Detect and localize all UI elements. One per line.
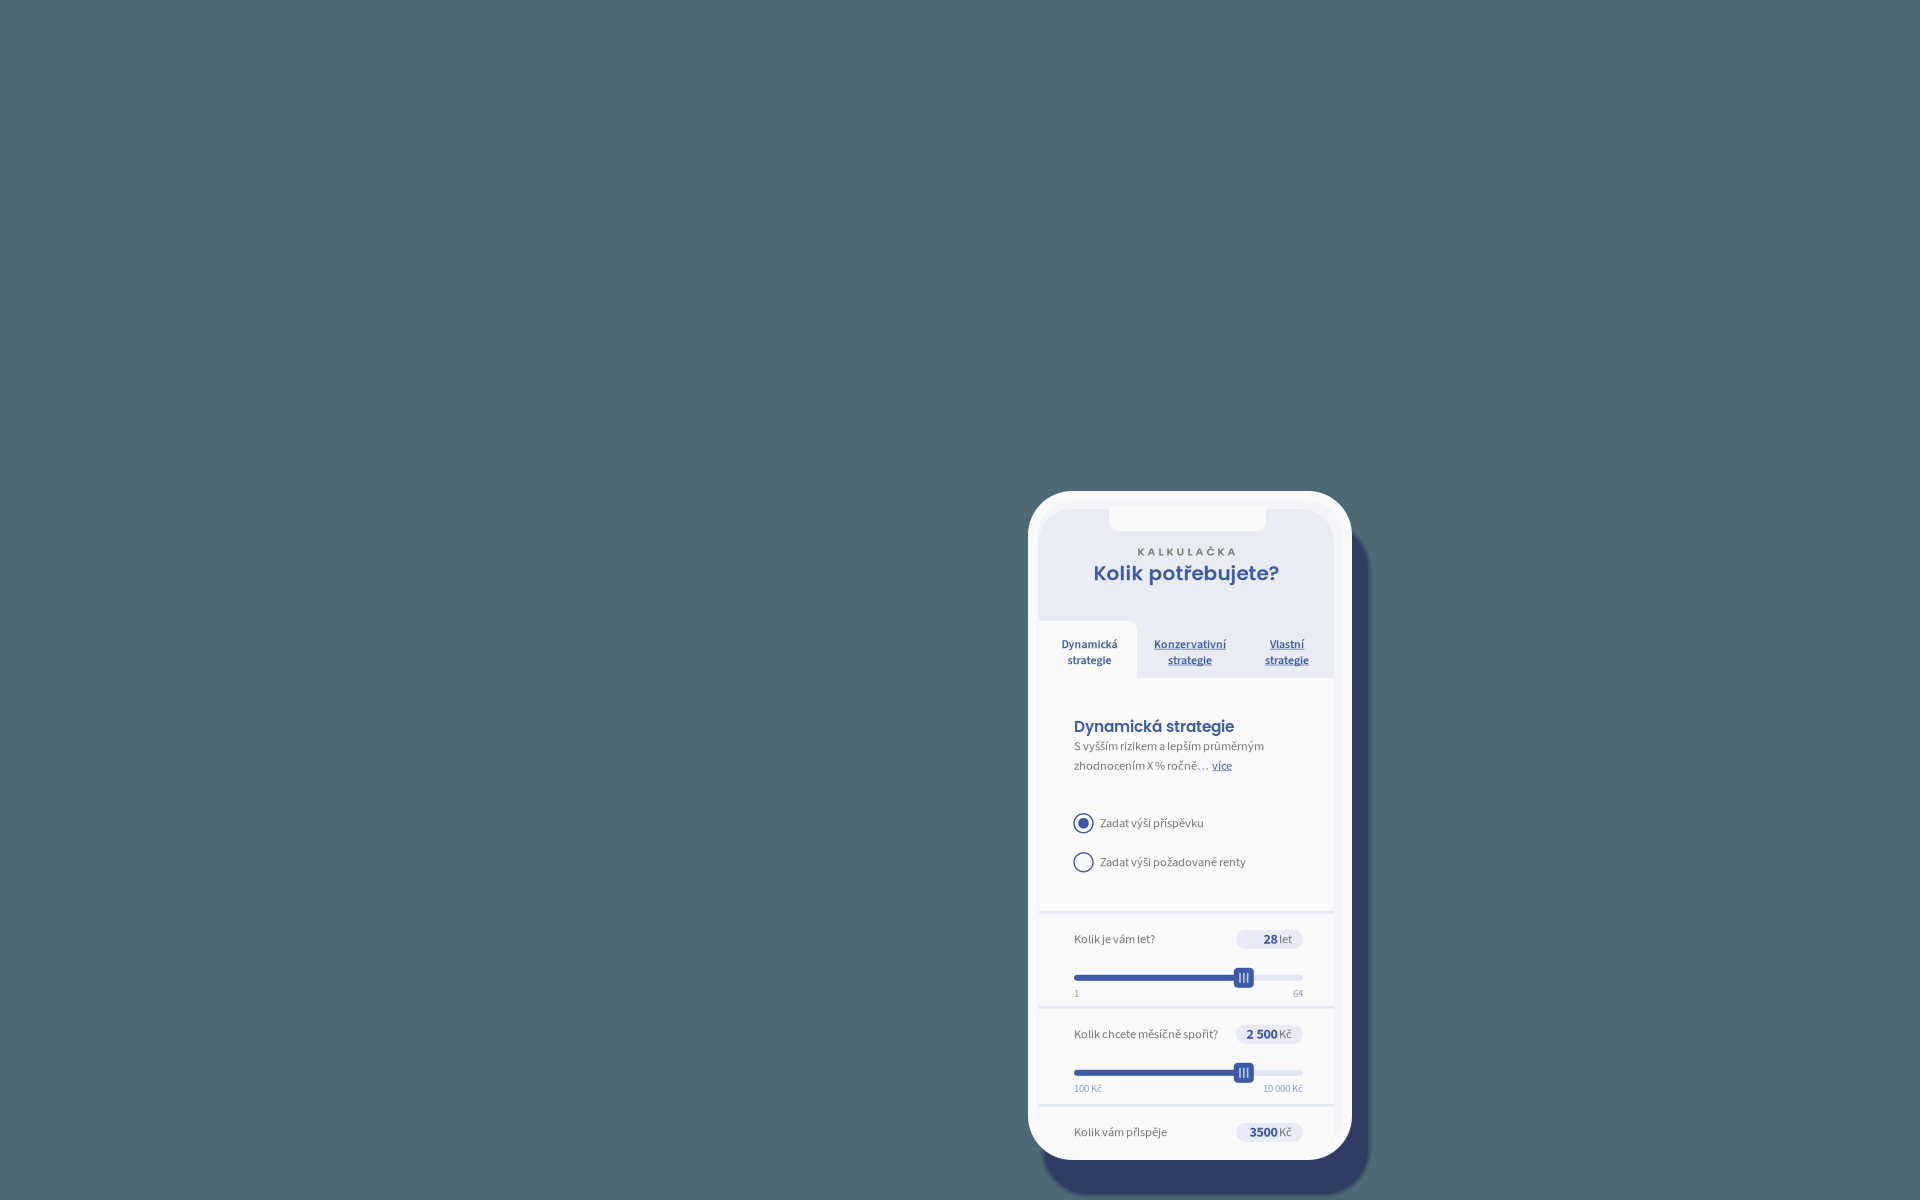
staticText: strategie xyxy=(1168,652,1212,669)
staticText: více xyxy=(1212,757,1232,775)
button[interactable]: více xyxy=(1212,757,1232,775)
staticText: 2 500 xyxy=(1246,1024,1277,1044)
staticText: K A L K U L A Č K A xyxy=(1137,544,1235,559)
staticText: Zadat výši požadované renty xyxy=(1100,853,1246,871)
staticText: 10 000 Kč xyxy=(1263,1081,1303,1096)
staticText: strategie xyxy=(1265,652,1309,669)
button[interactable]: Konzervativní xyxy=(1140,621,1240,678)
staticText: let xyxy=(1279,930,1292,948)
button[interactable]: Dynamická xyxy=(1039,621,1140,678)
staticText: Konzervativní xyxy=(1154,636,1226,653)
staticText: Kč xyxy=(1279,1025,1292,1043)
staticText: Kolik je vám let? xyxy=(1074,930,1155,948)
staticText: 64 xyxy=(1293,986,1303,1001)
staticText: 1 xyxy=(1074,986,1079,1001)
staticText: Vlastní xyxy=(1270,636,1304,653)
staticText: Dynamická xyxy=(1061,636,1117,653)
staticText: strategie xyxy=(1067,652,1111,669)
staticText: Zadat výši příspěvku xyxy=(1100,814,1204,832)
staticText: Dynamická strategie xyxy=(1074,716,1234,737)
staticText: 28 xyxy=(1263,929,1277,949)
staticText: zhodnocením X % ročně… xyxy=(1074,757,1209,775)
button[interactable]: Vlastní xyxy=(1240,621,1334,678)
staticText: Kolik potřebujete? xyxy=(1093,559,1279,587)
staticText: 3500 xyxy=(1249,1122,1277,1142)
staticText: Kolik vám přispěje xyxy=(1074,1123,1167,1141)
staticText: 100 Kč xyxy=(1074,1081,1102,1096)
staticText: Kolik chcete měsíčně spořit? xyxy=(1074,1025,1218,1043)
button[interactable]: Zadat výši požadované renty xyxy=(1074,853,1324,872)
staticText: Kč xyxy=(1279,1123,1292,1141)
button[interactable]: Zadat výši příspěvku xyxy=(1074,814,1324,833)
staticText: S vyšším rizikem a lepším průměrným xyxy=(1074,737,1264,755)
